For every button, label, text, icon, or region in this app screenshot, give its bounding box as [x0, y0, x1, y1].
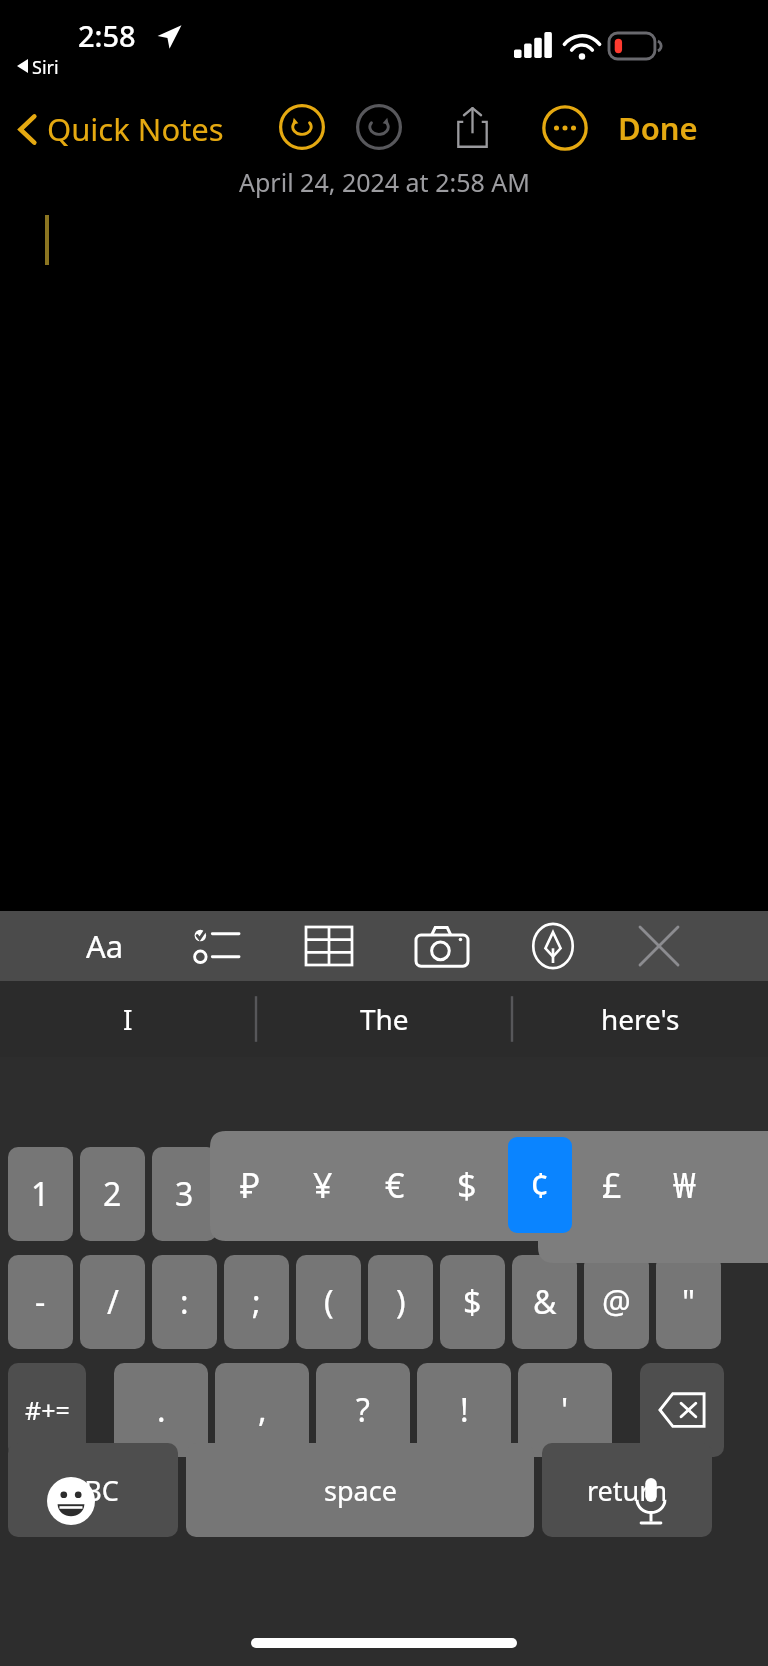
- button[interactable]: .: [114, 1363, 208, 1457]
- button[interactable]: 7: [440, 1147, 505, 1241]
- staticText: Done: [618, 107, 698, 149]
- button[interactable]: return: [542, 1443, 712, 1537]
- button[interactable]: I: [0, 981, 256, 1057]
- staticText: 6: [391, 1172, 410, 1216]
- staticText: ABC: [67, 1472, 119, 1509]
- button[interactable]: !: [417, 1363, 511, 1457]
- button[interactable]: Aa: [70, 911, 140, 981]
- staticText: ?: [356, 1388, 370, 1432]
- button[interactable]: Delete: [640, 1363, 724, 1457]
- button[interactable]: Camera: [406, 911, 478, 981]
- button[interactable]: /: [80, 1255, 145, 1349]
- staticText: Quick Notes: [47, 108, 224, 150]
- button[interactable]: Share: [447, 100, 497, 154]
- button[interactable]: Done: [610, 102, 706, 154]
- staticText: 3: [175, 1172, 194, 1216]
- button[interactable]: @: [584, 1255, 649, 1349]
- staticText: ,: [258, 1388, 267, 1432]
- button[interactable]: here's: [512, 981, 768, 1057]
- button[interactable]: 5: [296, 1147, 361, 1241]
- button[interactable]: #+=: [8, 1363, 86, 1457]
- button[interactable]: (: [296, 1255, 361, 1349]
- button[interactable]: Checklist: [176, 911, 256, 981]
- button[interactable]: 1: [8, 1147, 73, 1241]
- staticText: 2:58: [78, 16, 136, 55]
- staticText: 7: [463, 1172, 482, 1216]
- button[interactable]: ;: [224, 1255, 289, 1349]
- staticText: !: [460, 1388, 469, 1432]
- button[interactable]: ": [656, 1255, 721, 1349]
- button[interactable]: Undo: [278, 103, 326, 151]
- button[interactable]: Markup: [517, 911, 589, 981]
- staticText: I: [123, 1000, 133, 1038]
- staticText: ¥: [313, 1162, 333, 1208]
- button[interactable]: ABC: [8, 1443, 178, 1537]
- staticText: Siri: [32, 55, 59, 80]
- staticText: 5: [319, 1172, 338, 1216]
- button[interactable]: Table: [293, 911, 365, 981]
- staticText: ': [561, 1388, 569, 1432]
- staticText: ;: [252, 1280, 261, 1324]
- button[interactable]: &: [512, 1255, 577, 1349]
- staticText: here's: [601, 1000, 680, 1038]
- button[interactable]: ₽: [218, 1137, 282, 1233]
- staticText: &: [533, 1280, 557, 1324]
- staticText: April 24, 2024 at 2:58 AM: [239, 165, 530, 199]
- button[interactable]: ': [518, 1363, 612, 1457]
- button[interactable]: ): [368, 1255, 433, 1349]
- button[interactable]: ?: [316, 1363, 410, 1457]
- button[interactable]: 4: [224, 1147, 289, 1241]
- staticText: $: [463, 1280, 482, 1324]
- button[interactable]: £: [580, 1137, 644, 1233]
- button[interactable]: ¥: [291, 1137, 355, 1233]
- staticText: 0: [679, 1172, 698, 1216]
- staticText: 8: [535, 1172, 554, 1216]
- staticText: :: [180, 1280, 189, 1324]
- staticText: 2: [103, 1172, 122, 1216]
- staticText: .: [157, 1388, 166, 1432]
- staticText: $: [457, 1162, 477, 1208]
- staticText: ¢: [530, 1162, 550, 1208]
- button[interactable]: 2: [80, 1147, 145, 1241]
- staticText: £: [602, 1162, 622, 1208]
- staticText: €: [385, 1162, 405, 1208]
- staticText: #+=: [25, 1393, 70, 1427]
- staticText: ₩: [673, 1162, 696, 1208]
- button[interactable]: 6: [368, 1147, 433, 1241]
- staticText: ): [396, 1280, 406, 1324]
- button[interactable]: €: [363, 1137, 427, 1233]
- staticText: ₽: [240, 1162, 260, 1208]
- staticText: The: [360, 1000, 409, 1038]
- button[interactable]: :: [152, 1255, 217, 1349]
- staticText: space: [324, 1472, 397, 1509]
- staticText: -: [35, 1280, 46, 1324]
- button[interactable]: 9: [584, 1147, 649, 1241]
- button[interactable]: $: [435, 1137, 499, 1233]
- button[interactable]: More options: [540, 103, 590, 153]
- button[interactable]: 0: [656, 1147, 721, 1241]
- button[interactable]: Redo: [355, 103, 403, 151]
- staticText: (: [324, 1280, 334, 1324]
- button[interactable]: Dictation: [622, 1472, 680, 1530]
- button[interactable]: space: [186, 1443, 534, 1537]
- button[interactable]: -: [8, 1255, 73, 1349]
- button[interactable]: $: [440, 1255, 505, 1349]
- button[interactable]: Close formatting bar: [624, 911, 694, 981]
- staticText: 9: [607, 1172, 626, 1216]
- button[interactable]: The: [256, 981, 512, 1057]
- staticText: Aa: [86, 925, 124, 967]
- button[interactable]: Emoji keyboard: [42, 1472, 100, 1530]
- button[interactable]: ₩: [652, 1137, 716, 1233]
- button[interactable]: 3: [152, 1147, 217, 1241]
- button[interactable]: Quick Notes: [12, 102, 230, 156]
- staticText: ": [682, 1280, 696, 1324]
- button[interactable]: ¢: [508, 1137, 572, 1233]
- staticText: /: [107, 1280, 119, 1324]
- staticText: @: [602, 1280, 631, 1324]
- button[interactable]: ,: [215, 1363, 309, 1457]
- button[interactable]: 8: [512, 1147, 577, 1241]
- staticText: 1: [31, 1172, 50, 1216]
- staticText: return: [587, 1472, 668, 1509]
- staticText: 4: [247, 1172, 266, 1216]
